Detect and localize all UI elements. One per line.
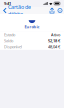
staticText: Estado [4,32,15,37]
staticText: 52,18 € [48,38,60,43]
button[interactable]: Cartão de débito [0,2,31,19]
button[interactable]: Partilhar [48,6,56,14]
staticText: 48,04 € [48,44,60,49]
staticText: Cartão de débito [8,3,31,18]
staticText: 9:41 [4,1,11,6]
staticText: Eurobic [24,24,39,29]
staticText: Saldo [4,38,13,43]
button[interactable]: Informação [56,7,64,14]
staticText: Disponível [4,44,22,49]
staticText: Ativo [51,32,60,37]
